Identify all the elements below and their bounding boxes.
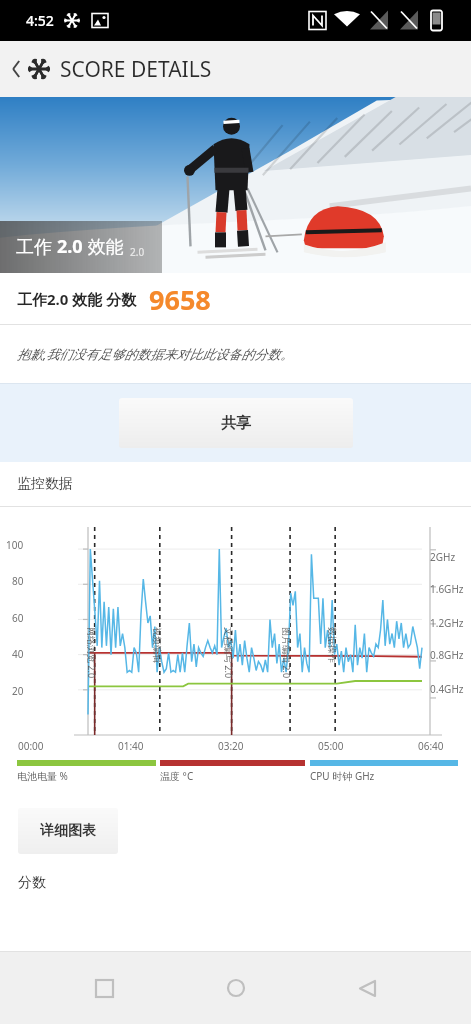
staticText: 4:52 bbox=[26, 11, 54, 30]
staticText: 2.0 bbox=[57, 234, 83, 259]
staticText: 100 bbox=[6, 538, 24, 552]
staticText: 2.0 bbox=[130, 245, 145, 259]
staticText: 00:00 bbox=[18, 739, 44, 753]
staticText: 05:00 bbox=[318, 739, 344, 753]
staticText: 数据操作 bbox=[327, 627, 338, 663]
staticText: 温度 °C bbox=[160, 769, 194, 783]
button[interactable]: SCORE DETAILS bbox=[0, 41, 471, 97]
button[interactable]: 共享 bbox=[119, 398, 353, 448]
staticText: 详细图表 bbox=[40, 822, 96, 840]
staticText: 工作2.0 效能 分数 bbox=[17, 289, 137, 309]
staticText: 抱歉,我们没有足够的数据来对比此设备的分数。 bbox=[17, 345, 294, 363]
staticText: 共享 bbox=[221, 414, 251, 433]
staticText: 视频编辑 bbox=[152, 627, 163, 663]
staticText: 文档编写 2.0 bbox=[223, 627, 235, 679]
staticText: 03:20 bbox=[218, 739, 244, 753]
staticText: SCORE DETAILS bbox=[60, 55, 212, 84]
staticText: 电池电量 % bbox=[17, 769, 68, 783]
staticText: 图片编辑 2.0 bbox=[281, 627, 293, 679]
staticText: 网络浏览 2.0 bbox=[86, 627, 98, 679]
staticText: 40 bbox=[12, 647, 24, 661]
staticText: 1.2GHz bbox=[430, 616, 464, 630]
staticText: 效能 bbox=[83, 234, 124, 259]
button[interactable]: 详细图表 bbox=[18, 808, 118, 854]
staticText: 工作 bbox=[16, 234, 57, 259]
staticText: CPU 时钟 GHz bbox=[310, 769, 375, 783]
staticText: 20 bbox=[12, 684, 24, 698]
button[interactable]: Back bbox=[339, 960, 395, 1016]
button[interactable]: Home bbox=[208, 960, 264, 1016]
staticText: 2GHz bbox=[430, 550, 456, 564]
staticText: 监控数据 bbox=[17, 475, 73, 493]
staticText: 0.4GHz bbox=[430, 682, 464, 696]
staticText: 9658 bbox=[149, 281, 211, 318]
staticText: 分数 bbox=[18, 874, 46, 892]
staticText: 80 bbox=[12, 574, 24, 588]
staticText: 60 bbox=[12, 611, 24, 625]
staticText: 01:40 bbox=[118, 739, 144, 753]
staticText: 06:40 bbox=[418, 739, 444, 753]
staticText: 0.8GHz bbox=[430, 648, 464, 662]
button[interactable]: Recent apps bbox=[76, 960, 132, 1016]
staticText: 1.6GHz bbox=[430, 582, 464, 596]
